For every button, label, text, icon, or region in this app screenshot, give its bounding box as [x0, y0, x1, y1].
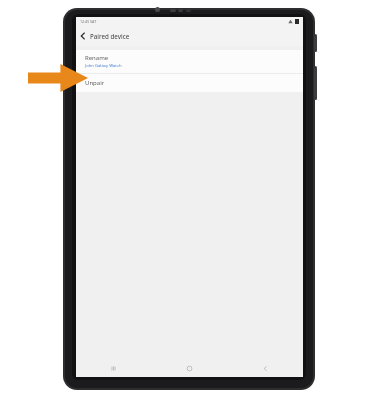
button[interactable]: Back — [76, 29, 90, 43]
button[interactable]: Recent apps — [76, 359, 151, 377]
button[interactable]: Home — [151, 359, 227, 377]
staticText: 12:45 SAT — [80, 19, 97, 24]
staticText: Unpair — [85, 79, 105, 87]
staticText: John Galaxy Watch — [85, 63, 122, 69]
button[interactable]: Rename — [76, 50, 303, 73]
staticText: Rename — [85, 54, 109, 62]
button[interactable]: Unpair — [76, 74, 303, 92]
staticText: Paired device — [90, 32, 130, 40]
